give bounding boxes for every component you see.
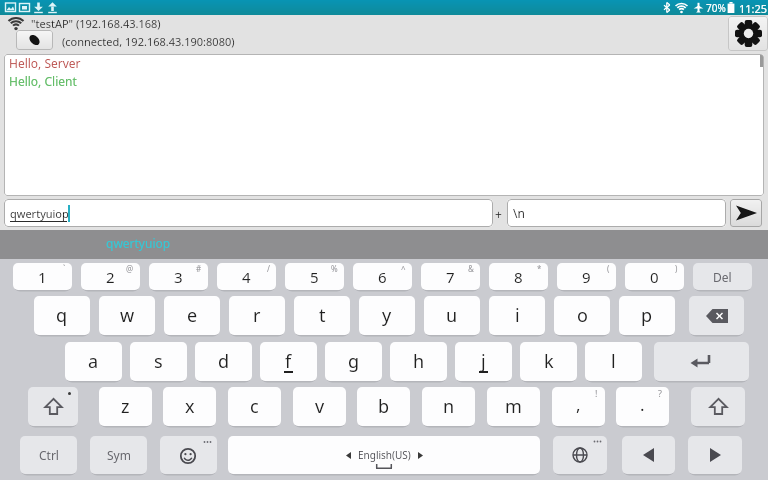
button[interactable]: o [554, 296, 610, 335]
button[interactable]: a [65, 342, 122, 381]
staticText: Hello, Server [9, 55, 81, 71]
staticText: 70% [706, 1, 726, 15]
staticText: h [413, 349, 425, 374]
button[interactable]: k [520, 342, 577, 381]
button[interactable] [730, 199, 762, 227]
button[interactable]: c [228, 387, 281, 426]
staticText: w [120, 303, 135, 328]
button[interactable]: , [552, 387, 605, 426]
button[interactable]: z [99, 387, 152, 426]
button[interactable]: v [293, 387, 346, 426]
staticText: 4 [242, 267, 251, 287]
staticText: Del [713, 269, 732, 285]
button[interactable]: 6 [353, 263, 412, 290]
staticText: l [611, 349, 616, 374]
staticText: a [88, 349, 99, 374]
button[interactable]: j [455, 342, 512, 381]
staticText: g [348, 349, 360, 374]
staticText: v [315, 394, 325, 419]
staticText: 11:25 [739, 1, 768, 16]
button[interactable]: q [34, 296, 90, 335]
button[interactable]: 7 [421, 263, 480, 290]
button[interactable]: 0 [625, 263, 684, 290]
staticText: # [196, 263, 202, 274]
staticText: Hello, Client [9, 73, 77, 89]
button[interactable]: s [130, 342, 187, 381]
button[interactable]: u [424, 296, 480, 335]
staticText: b [378, 394, 390, 419]
staticText: m [505, 394, 522, 419]
staticText: % [331, 263, 338, 274]
button[interactable]: . [616, 387, 669, 426]
staticText: n [443, 394, 455, 419]
button[interactable]: f [260, 342, 317, 381]
button[interactable] [654, 342, 749, 381]
button[interactable]: d [195, 342, 252, 381]
button[interactable]: h [390, 342, 447, 381]
button[interactable]: g [325, 342, 382, 381]
button[interactable]: qwertyuiop [4, 199, 493, 227]
staticText: 7 [446, 267, 455, 287]
button[interactable] [691, 387, 745, 426]
button[interactable]: Del [693, 263, 752, 290]
staticText: * [537, 263, 542, 274]
staticText: ` [63, 263, 66, 274]
staticText: 9 [582, 267, 591, 287]
staticText: + [495, 206, 502, 222]
staticText: & [468, 263, 474, 274]
button[interactable]: p [619, 296, 675, 335]
button[interactable] [728, 16, 768, 51]
button[interactable]: Ctrl [20, 436, 77, 474]
staticText: q [56, 303, 68, 328]
staticText: i [515, 303, 520, 328]
button[interactable] [689, 296, 744, 335]
staticText: Sym [107, 447, 131, 463]
button[interactable]: m [487, 387, 540, 426]
staticText: p [641, 303, 653, 328]
staticText: qwertyuiop [10, 206, 69, 221]
button[interactable]: l [585, 342, 642, 381]
staticText: 8 [514, 267, 523, 287]
staticText: 6 [378, 267, 387, 287]
button[interactable]: 1 [13, 263, 72, 290]
staticText: "testAP" (192.168.43.168) [31, 16, 161, 31]
button[interactable]: 9 [557, 263, 616, 290]
button[interactable]: n [422, 387, 475, 426]
staticText: , [576, 393, 581, 416]
button[interactable]: 8 [489, 263, 548, 290]
button[interactable] [28, 387, 78, 426]
staticText: @ [126, 263, 134, 274]
button[interactable]: 3 [149, 263, 208, 290]
button[interactable] [622, 436, 675, 474]
staticText: 2 [106, 267, 115, 287]
staticText: . [640, 393, 645, 416]
staticText: u [446, 303, 458, 328]
button[interactable]: 2 [81, 263, 140, 290]
button[interactable]: English(US) [228, 436, 540, 474]
button[interactable]: y [359, 296, 415, 335]
staticText: (connected, 192.168.43.190:8080) [62, 34, 235, 49]
button[interactable]: Sym [90, 436, 147, 474]
button[interactable]: t [294, 296, 350, 335]
staticText: 1 [38, 267, 47, 287]
button[interactable] [16, 30, 53, 50]
staticText: ) [675, 263, 678, 274]
button[interactable]: 4 [217, 263, 276, 290]
button[interactable]: 5 [285, 263, 344, 290]
button[interactable]: e [164, 296, 220, 335]
button[interactable]: b [357, 387, 410, 426]
staticText: ! [595, 387, 598, 399]
staticText: y [382, 303, 392, 328]
button[interactable] [160, 436, 217, 474]
staticText: 5 [310, 267, 319, 287]
button[interactable]: \n [507, 199, 726, 227]
button[interactable]: x [163, 387, 216, 426]
staticText: k [544, 349, 554, 374]
button[interactable] [553, 436, 607, 474]
staticText: Ctrl [39, 447, 59, 463]
staticText: t [319, 303, 326, 328]
button[interactable]: r [229, 296, 285, 335]
button[interactable] [688, 436, 742, 474]
button[interactable]: i [489, 296, 545, 335]
button[interactable]: w [99, 296, 155, 335]
